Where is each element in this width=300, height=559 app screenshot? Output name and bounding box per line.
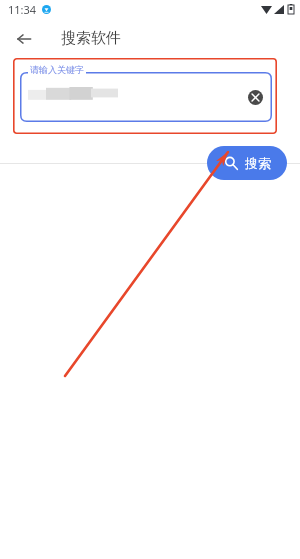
- button[interactable]: 搜索: [207, 146, 287, 180]
- button[interactable]: Back: [10, 25, 37, 52]
- staticText: 搜索软件: [61, 29, 121, 48]
- staticText: 请输入关键字: [30, 64, 84, 75]
- staticText: 搜索: [245, 155, 271, 171]
- button[interactable]: Clear text: [20, 72, 272, 122]
- staticText: 11:34: [8, 2, 37, 17]
- button[interactable]: Clear text: [245, 87, 265, 107]
